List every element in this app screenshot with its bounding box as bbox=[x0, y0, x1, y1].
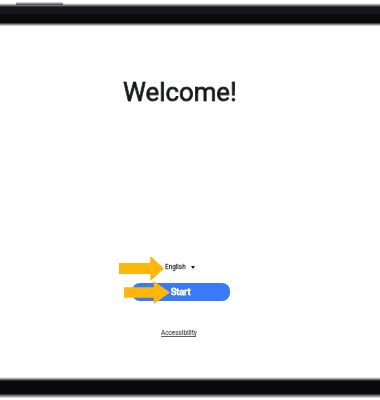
other: Pointer to language selector bbox=[119, 256, 164, 281]
staticText: English bbox=[165, 263, 186, 271]
staticText: Start bbox=[171, 287, 191, 298]
staticText: Welcome! bbox=[123, 77, 237, 107]
other: Pointer to Start button bbox=[124, 281, 170, 304]
button[interactable]: English bbox=[163, 259, 195, 274]
staticText: Welcome! bbox=[123, 77, 237, 107]
staticText: English bbox=[165, 263, 186, 271]
staticText: Start bbox=[171, 287, 191, 298]
staticText: Accessibility bbox=[161, 329, 197, 337]
button[interactable]: Accessibility bbox=[159, 327, 198, 338]
button[interactable]: Start bbox=[132, 283, 230, 301]
staticText: Accessibility bbox=[161, 329, 197, 337]
